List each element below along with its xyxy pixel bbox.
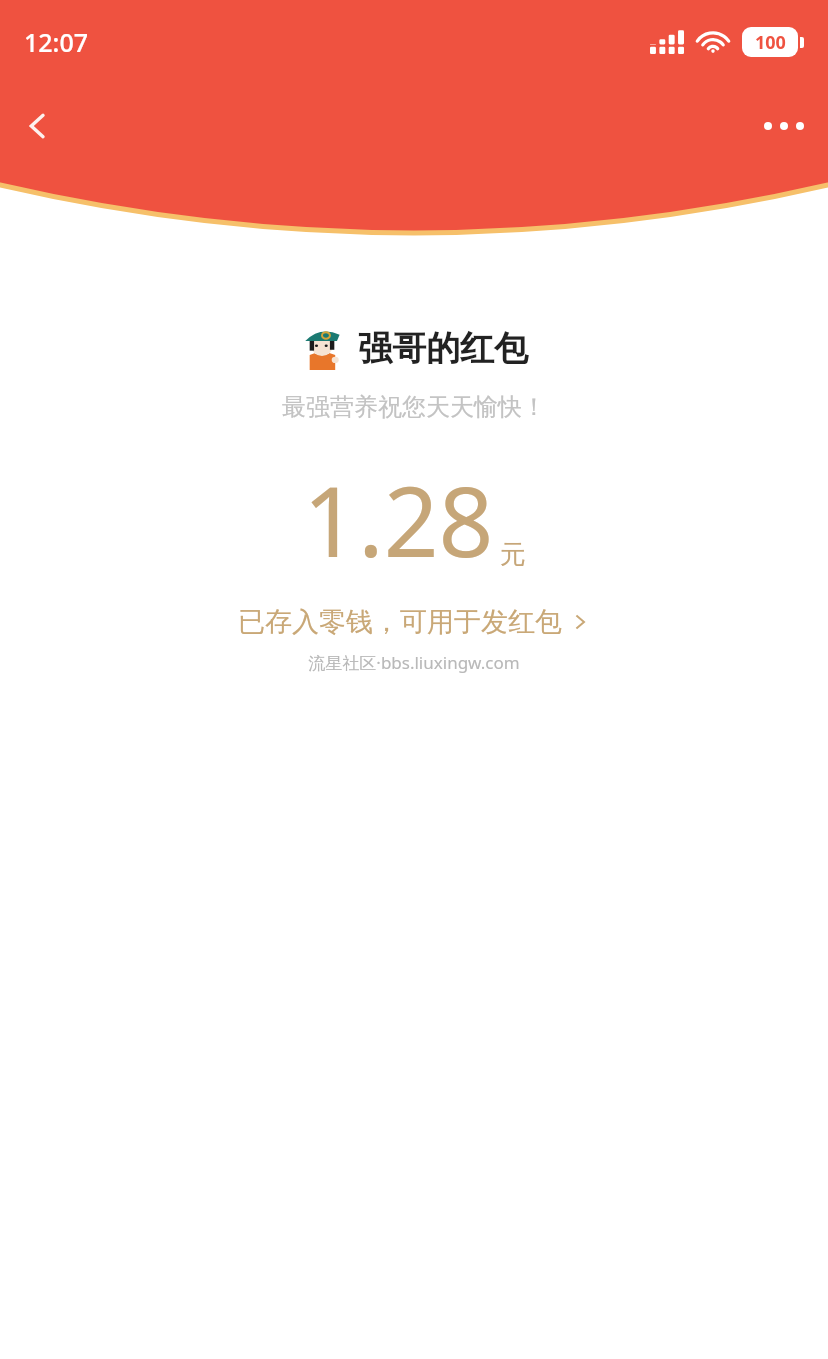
staticText: 12:07 — [24, 25, 89, 59]
button[interactable]: 已存入零钱，可用于发红包 — [228, 601, 600, 643]
button[interactable]: Back — [10, 98, 66, 154]
button[interactable]: More options — [754, 96, 814, 156]
staticText: 100 — [755, 30, 786, 55]
staticText: 强哥的红包 — [358, 327, 528, 370]
staticText: 已存入零钱，可用于发红包 — [238, 605, 562, 639]
staticText: 1.28 — [303, 454, 494, 585]
staticText: 流星社区·bbs.liuxingw.com — [308, 651, 520, 674]
staticText: 元 — [500, 538, 526, 571]
staticText: 最强营养祝您天天愉快！ — [282, 392, 546, 422]
